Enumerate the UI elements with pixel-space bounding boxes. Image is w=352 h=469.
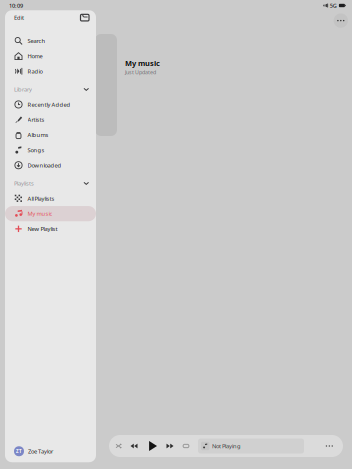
staticText: My music <box>27 210 52 217</box>
button[interactable]: Library <box>5 82 96 97</box>
staticText: Downloaded <box>27 161 61 169</box>
staticText: Edit <box>14 14 24 21</box>
button[interactable]: Albums <box>5 127 96 142</box>
staticText: New Playlist <box>27 225 57 233</box>
button[interactable]: Edit <box>14 14 24 21</box>
button[interactable]: Repeat <box>183 443 189 449</box>
staticText: Search <box>27 37 45 45</box>
staticText: 10:09 <box>9 2 23 9</box>
button[interactable]: Shuffle <box>116 443 122 449</box>
button[interactable]: All Playlists <box>5 191 96 206</box>
staticText: Songs <box>27 146 44 154</box>
staticText: Zoe Taylor <box>28 447 53 455</box>
button[interactable]: More <box>326 445 333 447</box>
button[interactable]: Play <box>147 441 157 451</box>
button[interactable]: Songs <box>5 142 96 158</box>
button[interactable]: Home <box>5 48 96 64</box>
button[interactable]: New Playlist <box>5 221 96 236</box>
staticText: Artists <box>27 116 44 123</box>
staticText: Playlists <box>14 179 34 187</box>
button[interactable]: Search <box>5 33 96 48</box>
button[interactable]: More options <box>334 13 348 28</box>
button[interactable]: Previous <box>130 442 137 449</box>
button[interactable]: New Folder <box>80 14 89 21</box>
staticText: 5G <box>330 2 337 9</box>
button[interactable]: Not Playing <box>198 438 304 453</box>
staticText: Not Playing <box>212 442 241 450</box>
button[interactable]: Recently Added <box>5 97 96 112</box>
staticText: Radio <box>27 67 42 75</box>
button[interactable]: Next <box>166 442 173 449</box>
staticText: Just Updated <box>125 69 156 76</box>
staticText: All Playlists <box>27 194 54 202</box>
button[interactable]: Playlists <box>5 176 96 191</box>
staticText: My music <box>125 58 160 68</box>
button[interactable]: ZT <box>5 440 96 462</box>
staticText: Albums <box>27 131 48 139</box>
staticText: Home <box>27 52 42 60</box>
button[interactable]: My music <box>5 206 96 221</box>
staticText: Recently Added <box>27 100 70 108</box>
staticText: Library <box>14 85 32 93</box>
button[interactable]: Artists <box>5 112 96 127</box>
button[interactable]: Radio <box>5 64 96 79</box>
button[interactable]: Downloaded <box>5 158 96 173</box>
staticText: ZT <box>16 448 22 454</box>
